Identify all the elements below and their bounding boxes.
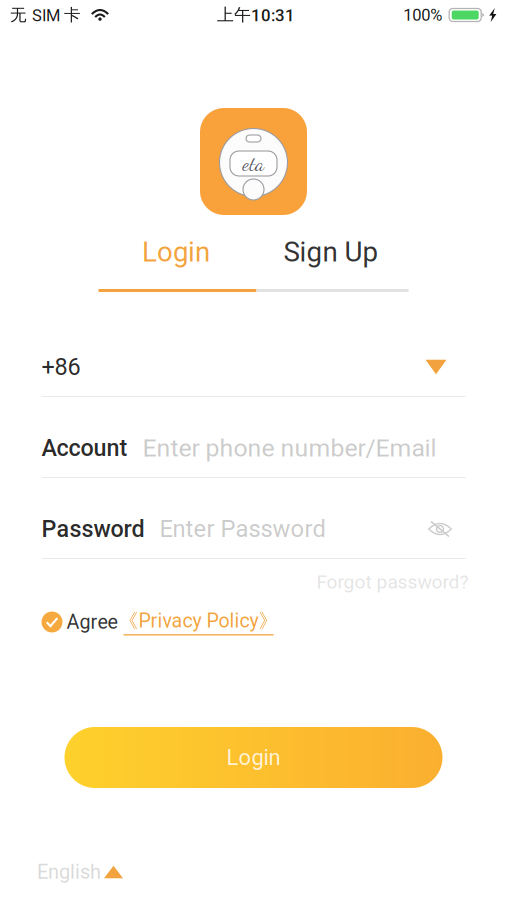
staticText: 上午10:31 (217, 4, 295, 26)
staticText: Enter phone number/Email (142, 433, 436, 463)
staticText: Forgot password? (316, 571, 468, 593)
button[interactable]: Login (64, 727, 442, 788)
staticText: Account (41, 434, 127, 462)
staticText: 《Privacy Policy》 (118, 608, 278, 633)
staticText: Agree (66, 610, 117, 633)
button[interactable]: Sign Up (253, 234, 408, 270)
staticText: Password (41, 515, 144, 543)
staticText: English (37, 860, 101, 884)
staticText: 100% (403, 5, 442, 25)
button[interactable]: Login (98, 234, 253, 270)
staticText: Login (142, 236, 210, 268)
staticText: +86 (41, 353, 80, 381)
staticText: Enter Password (159, 515, 325, 543)
button[interactable]: Show password (413, 509, 465, 549)
staticText: Sign Up (283, 236, 378, 268)
staticText: 无 SIM 卡 (10, 5, 81, 25)
staticText: eta (242, 151, 264, 175)
button[interactable]: Agree (41, 610, 117, 633)
staticText: Login (226, 745, 280, 770)
button[interactable]: Forgot password? (316, 571, 465, 593)
button[interactable]: 《Privacy Policy》 (118, 608, 278, 635)
button[interactable]: Select country code (411, 348, 465, 386)
button[interactable]: English (37, 860, 123, 884)
